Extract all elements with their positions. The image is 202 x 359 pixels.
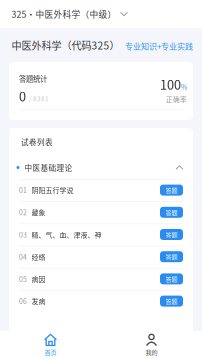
button[interactable]: 06: [9, 290, 193, 312]
button[interactable]: 325·中医外科学（中级）: [0, 0, 202, 28]
staticText: 100: [160, 75, 181, 93]
staticText: 中医基础理论: [24, 162, 72, 173]
staticText: 05: [19, 274, 27, 284]
staticText: 答题: [165, 208, 177, 217]
staticText: 答题: [165, 230, 177, 239]
staticText: 发病: [31, 296, 45, 306]
staticText: 藏象: [31, 207, 45, 217]
staticText: / 8381: [29, 93, 49, 103]
button[interactable]: 04: [9, 246, 193, 268]
staticText: 答题统计: [19, 73, 47, 84]
button[interactable]: 01: [9, 179, 193, 201]
staticText: 病因: [31, 274, 45, 284]
staticText: 试卷列表: [21, 136, 53, 147]
button[interactable]: 02: [9, 201, 193, 223]
staticText: %: [181, 82, 187, 92]
staticText: 中医外科学（代码325）: [11, 38, 119, 52]
staticText: 答题: [165, 186, 177, 195]
staticText: 答题: [165, 274, 177, 283]
staticText: 03: [19, 229, 27, 239]
staticText: 答题: [165, 252, 177, 261]
button[interactable]: 05: [9, 268, 193, 290]
staticText: 经络: [31, 252, 45, 262]
button[interactable]: 我的: [101, 331, 202, 359]
staticText: 04: [19, 252, 27, 262]
staticText: 答题: [165, 297, 177, 306]
staticText: 专业知识+专业实践: [125, 40, 193, 52]
staticText: 02: [19, 207, 27, 217]
staticText: 精、气、血、津液、神: [31, 229, 101, 239]
button[interactable]: 首页: [0, 331, 101, 359]
button[interactable]: 中医基础理论: [9, 156, 193, 179]
staticText: 06: [19, 296, 27, 306]
staticText: 0: [19, 87, 26, 105]
staticText: 首页: [44, 348, 56, 356]
staticText: 01: [19, 185, 27, 195]
staticText: 阴阳五行学说: [31, 185, 73, 195]
staticText: 325·中医外科学（中级）: [11, 8, 116, 20]
staticText: 正确率: [166, 94, 187, 104]
staticText: 我的: [145, 348, 157, 356]
button[interactable]: 03: [9, 223, 193, 246]
